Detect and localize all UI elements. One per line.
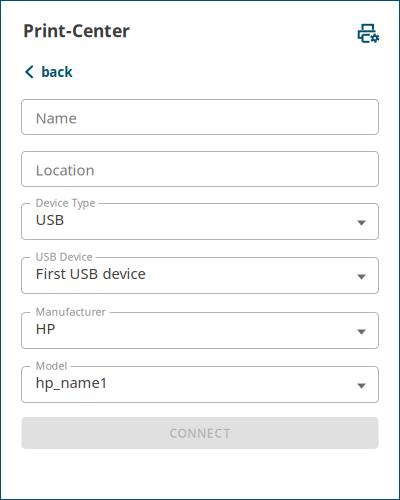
- staticText: hp_name1: [35, 372, 107, 392]
- button[interactable]: CONNECT: [21, 417, 378, 449]
- staticText: Model: [35, 358, 67, 373]
- button[interactable]: Printer settings: [351, 18, 385, 49]
- staticText: Manufacturer: [35, 304, 105, 319]
- staticText: CONNECT: [170, 425, 230, 441]
- staticText: USB Device: [35, 249, 92, 264]
- staticText: Location: [35, 160, 94, 179]
- staticText: Name: [35, 108, 76, 127]
- staticText: back: [41, 63, 72, 81]
- button[interactable]: back: [21, 59, 76, 85]
- staticText: Print-Center: [23, 19, 130, 42]
- staticText: HP: [35, 318, 55, 338]
- staticText: First USB device: [35, 263, 145, 283]
- staticText: USB: [35, 209, 64, 229]
- staticText: Device Type: [35, 195, 95, 210]
